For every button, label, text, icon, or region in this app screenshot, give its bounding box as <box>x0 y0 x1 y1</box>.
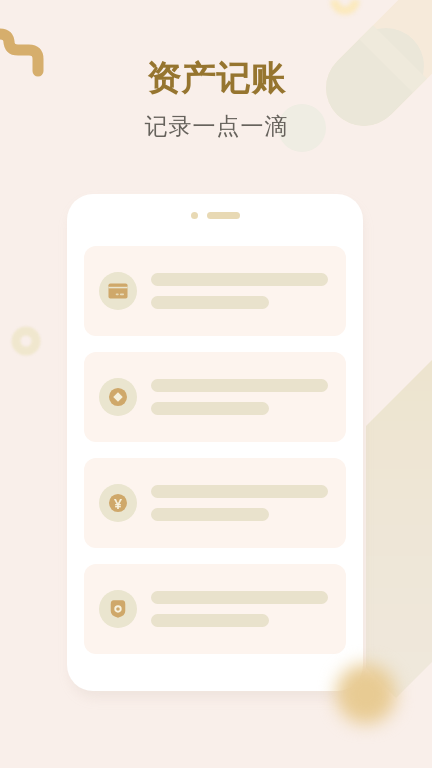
staticText: 资产记账 <box>146 57 286 100</box>
staticText: 记录一点一滴 <box>144 112 288 141</box>
button[interactable] <box>84 564 346 654</box>
staticText: ¥ <box>114 494 123 513</box>
button[interactable] <box>84 352 346 442</box>
button[interactable] <box>84 246 346 336</box>
button[interactable]: ¥ <box>84 458 346 548</box>
